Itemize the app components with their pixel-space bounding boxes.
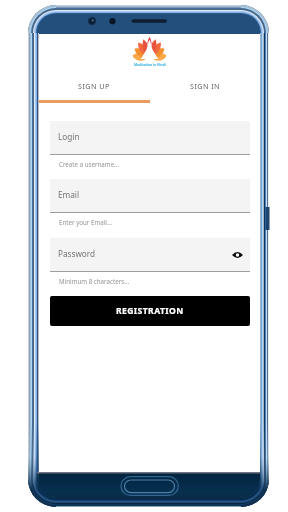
staticText: REGISTRATION	[116, 305, 184, 317]
staticText: Login	[58, 131, 80, 142]
button[interactable]: SIGN IN	[149, 75, 260, 96]
button[interactable]: Email	[50, 179, 250, 212]
staticText: Password	[58, 248, 96, 259]
staticText: Minimum 8 characters...	[59, 277, 130, 285]
button[interactable]: Login	[50, 121, 250, 154]
button[interactable]: SIGN UP	[39, 75, 149, 96]
staticText: Email	[58, 189, 80, 200]
staticText: SIGN UP	[78, 81, 110, 91]
other: Show password	[232, 251, 243, 259]
staticText: SIGN IN	[190, 81, 220, 91]
button[interactable]: REGISTRATION	[50, 296, 250, 326]
staticText: Create a username...	[59, 160, 120, 168]
staticText: Meditation in Hindi	[134, 62, 166, 66]
staticText: Enter your Email...	[59, 218, 112, 226]
button[interactable]: Password	[50, 238, 250, 271]
